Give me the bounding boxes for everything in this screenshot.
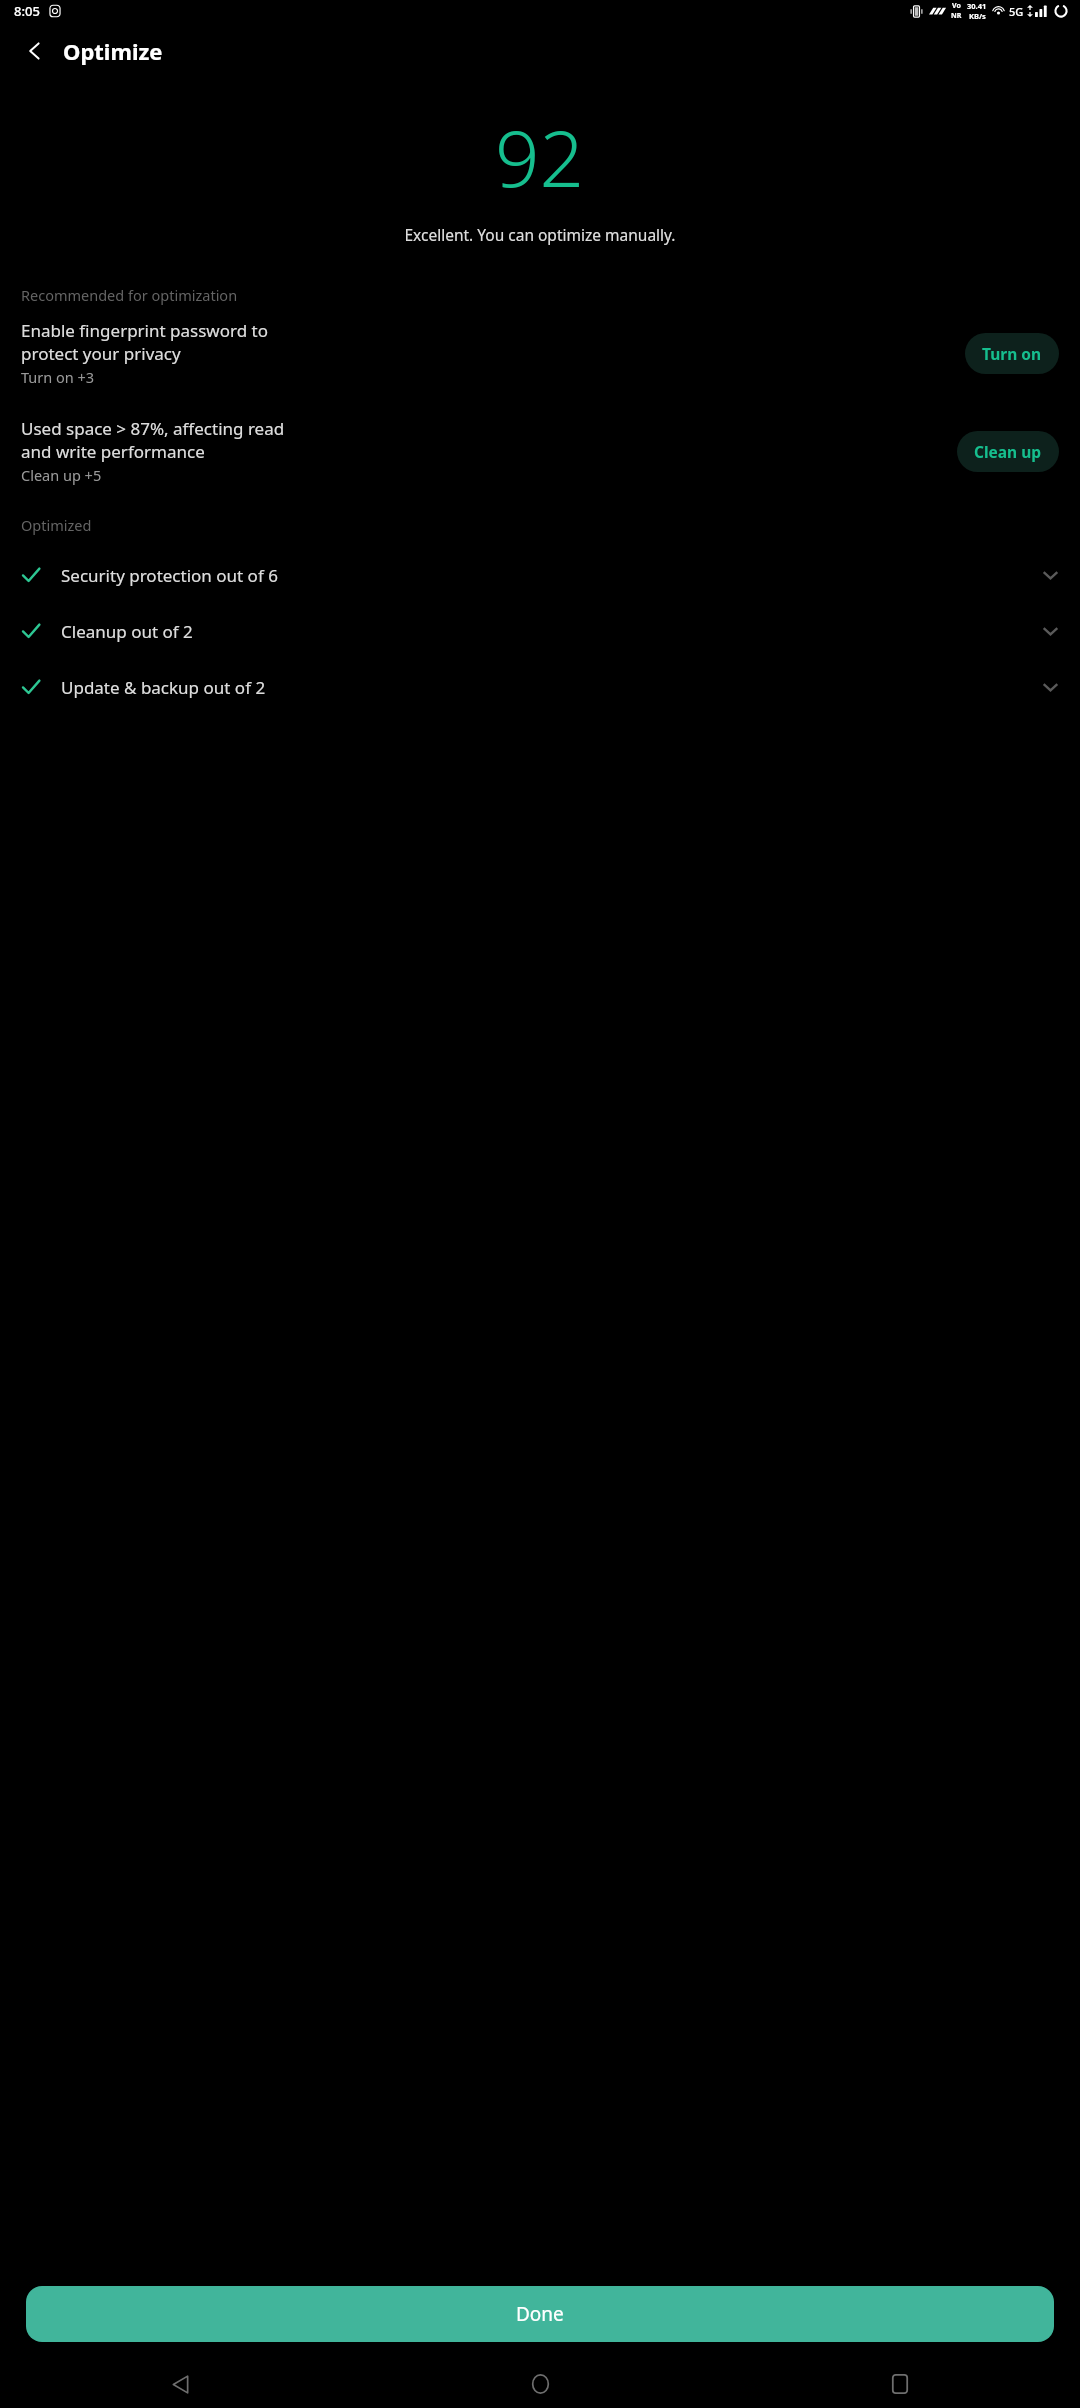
staticText: Security protection out of 6 <box>61 564 1042 587</box>
staticText: Optimize <box>63 36 163 66</box>
staticText: Turn on +3 <box>21 367 95 387</box>
button[interactable]: Back <box>0 2360 360 2408</box>
staticText: Vo <box>952 1 961 11</box>
button[interactable]: Home <box>360 2360 720 2408</box>
staticText: 30.41 <box>967 1 987 11</box>
staticText: NR <box>951 11 962 21</box>
staticText: Clean up <box>974 441 1042 462</box>
staticText: Turn on <box>982 343 1042 364</box>
staticText: 5G <box>1009 4 1024 19</box>
button[interactable]: Cleanup out of 2 <box>0 603 1080 659</box>
staticText: Clean up +5 <box>21 465 102 485</box>
staticText: protect your privacy <box>21 342 181 365</box>
button[interactable]: Turn on <box>965 333 1059 374</box>
button[interactable]: Enable fingerprint password to <box>0 319 1080 387</box>
staticText: Recommended for optimization <box>21 285 238 305</box>
button[interactable]: Recent apps <box>720 2360 1080 2408</box>
button[interactable]: Clean up <box>957 431 1059 472</box>
staticText: Optimized <box>21 515 92 535</box>
button[interactable]: Used space > 87%, affecting read <box>0 417 1080 485</box>
button[interactable]: Update & backup out of 2 <box>0 659 1080 715</box>
staticText: Update & backup out of 2 <box>61 676 1042 699</box>
staticText: and write performance <box>21 440 205 463</box>
staticText: Cleanup out of 2 <box>61 620 1042 643</box>
staticText: 8:05 <box>14 2 40 20</box>
staticText: 92 <box>495 104 585 210</box>
staticText: Used space > 87%, affecting read <box>21 417 285 440</box>
button[interactable]: Back <box>14 30 56 72</box>
button[interactable]: Done <box>26 2286 1054 2342</box>
staticText: KB/s <box>969 11 986 21</box>
staticText: Done <box>516 2301 564 2327</box>
staticText: Excellent. You can optimize manually. <box>404 224 676 245</box>
staticText: Enable fingerprint password to <box>21 319 268 342</box>
button[interactable]: Security protection out of 6 <box>0 547 1080 603</box>
